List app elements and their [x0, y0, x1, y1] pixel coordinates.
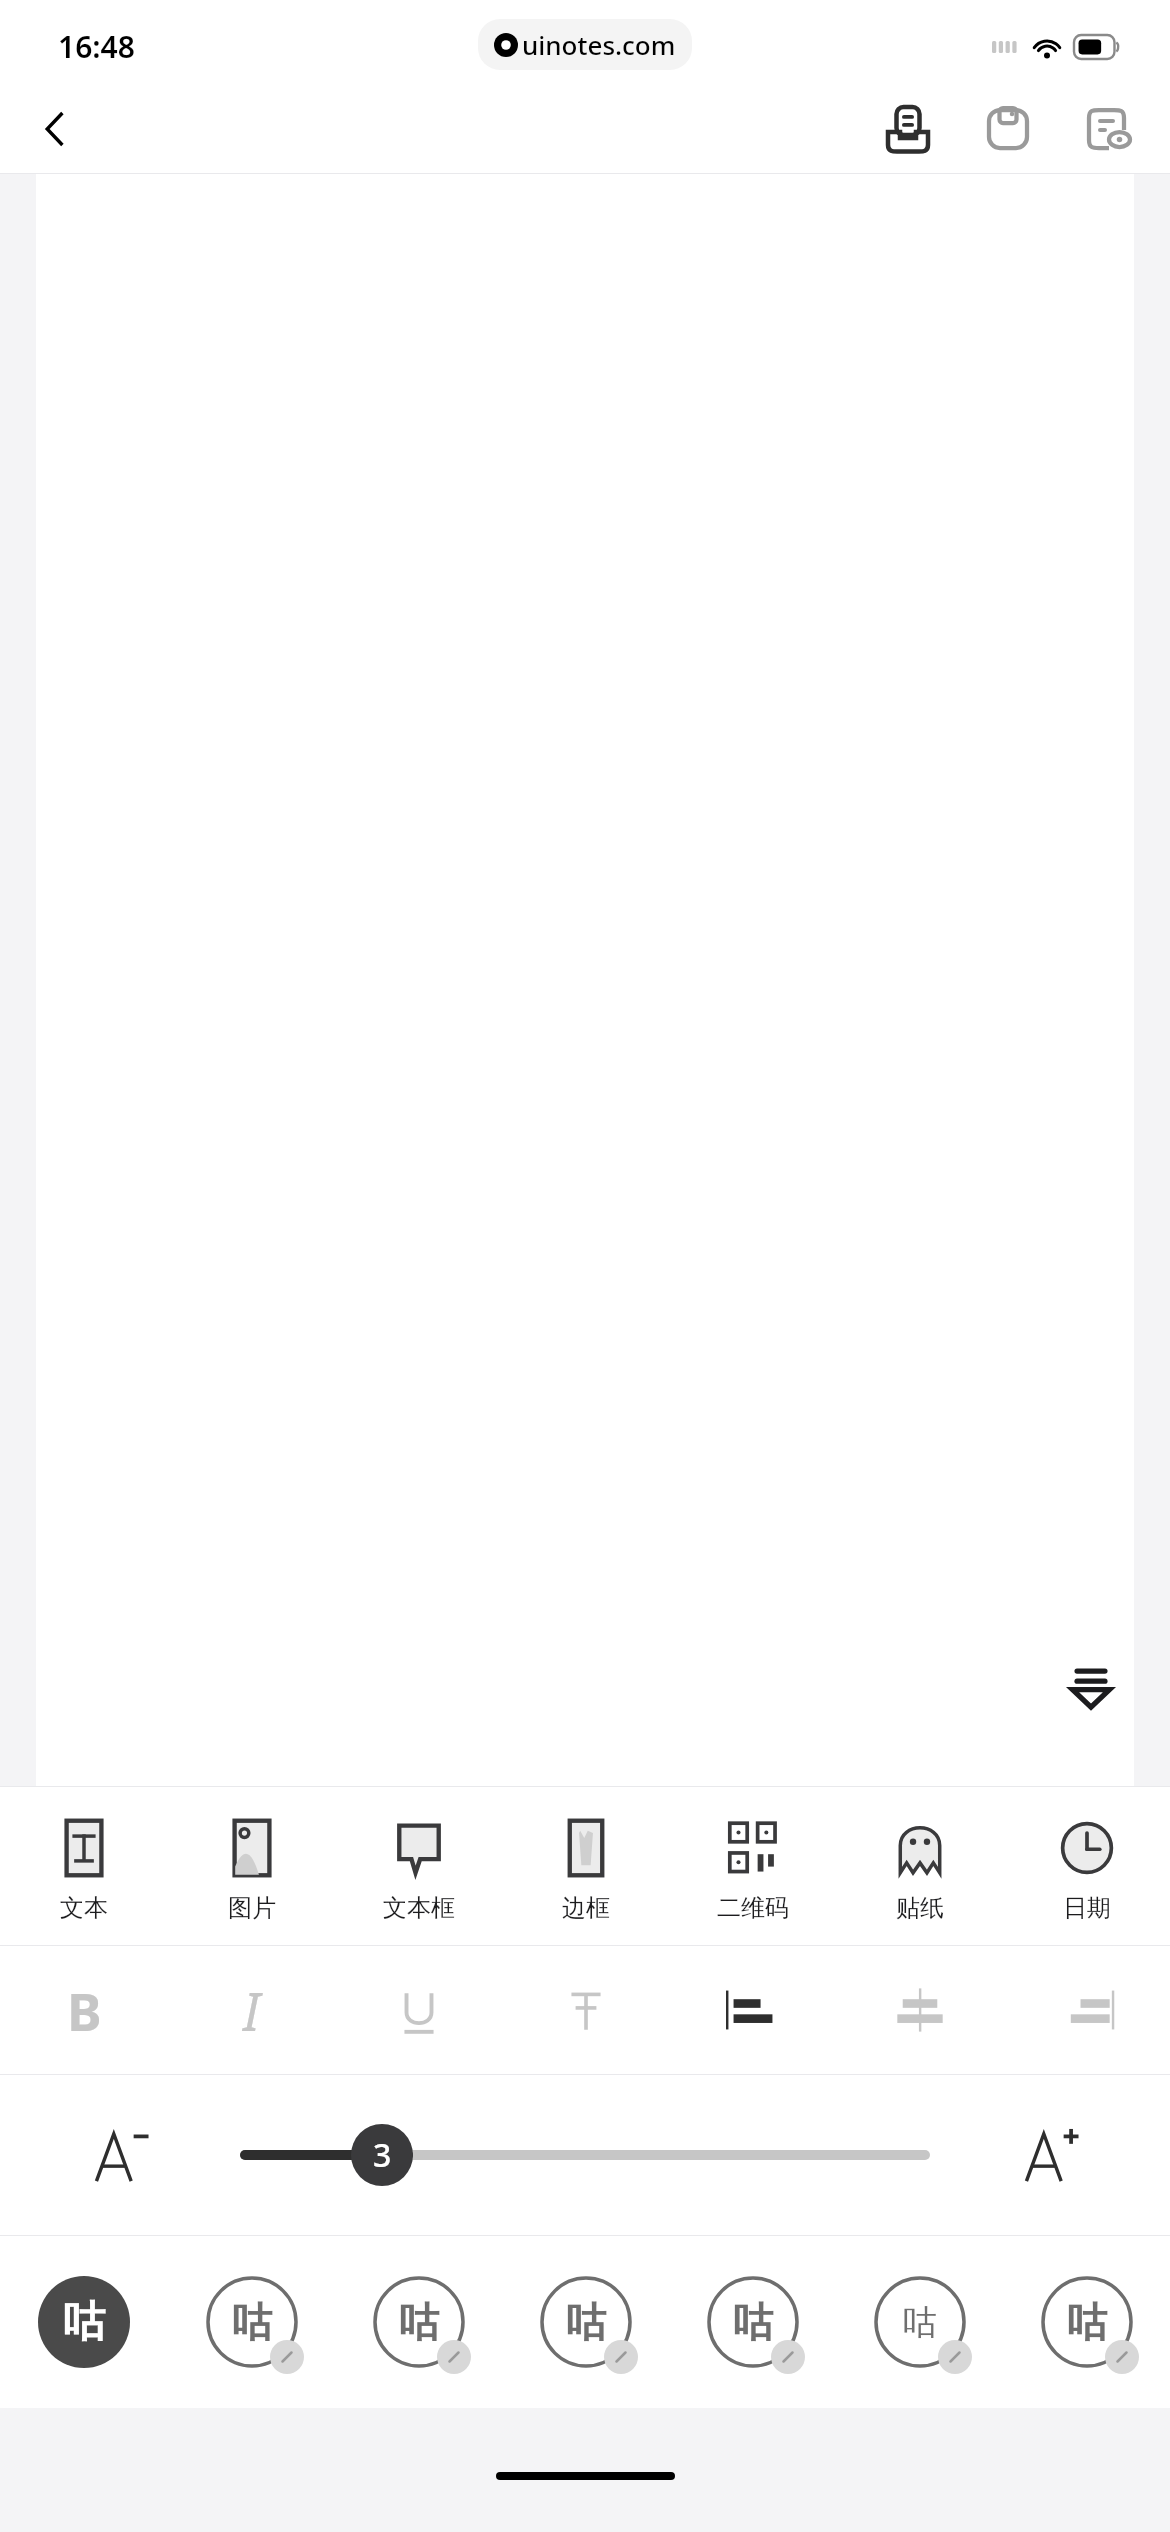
button[interactable]: Font style 6: [836, 2236, 1003, 2408]
staticText: 3: [373, 2133, 392, 2177]
button[interactable]: Collapse panel: [1048, 1642, 1134, 1728]
button[interactable]: 二维码: [669, 1787, 836, 1945]
staticText: uinotes.com: [522, 27, 676, 62]
staticText: 咕: [399, 2297, 439, 2347]
button[interactable]: 图片: [168, 1787, 335, 1945]
staticText: 日期: [1063, 1893, 1111, 1923]
staticText: 文本: [60, 1893, 108, 1923]
staticText: 咕: [733, 2297, 773, 2347]
staticText: 咕: [1067, 2297, 1107, 2347]
button[interactable]: 贴纸: [836, 1787, 1003, 1945]
staticText: 二维码: [717, 1893, 789, 1923]
button[interactable]: Strikethrough: [502, 1946, 669, 2074]
staticText: I: [243, 1975, 260, 2046]
staticText: 边框: [562, 1893, 610, 1923]
staticText: 16:48: [58, 26, 135, 67]
button[interactable]: 文本: [0, 1787, 168, 1945]
button[interactable]: Align right: [1003, 1946, 1170, 2074]
staticText: 贴纸: [896, 1893, 944, 1923]
button[interactable]: Italic: [168, 1946, 335, 2074]
staticText: 文本框: [383, 1893, 455, 1923]
button[interactable]: Bold: [0, 1946, 168, 2074]
button[interactable]: 日期: [1003, 1787, 1170, 1945]
button[interactable]: Align left: [669, 1946, 836, 2074]
staticText: 咕: [903, 2301, 937, 2344]
button[interactable]: 边框: [502, 1787, 669, 1945]
staticText: 咕: [232, 2297, 272, 2347]
button[interactable]: Template: [872, 93, 944, 165]
button[interactable]: Save: [972, 93, 1044, 165]
button[interactable]: 文本框: [335, 1787, 502, 1945]
staticText: 咕: [63, 2296, 105, 2349]
button[interactable]: Font style 7: [1003, 2236, 1170, 2408]
button[interactable]: Font style 3: [335, 2236, 502, 2408]
staticText: 咕: [566, 2297, 606, 2347]
button[interactable]: Increase font size: [930, 2075, 1170, 2235]
button[interactable]: Font style 5: [669, 2236, 836, 2408]
button[interactable]: Preview: [1072, 93, 1144, 165]
button[interactable]: 3: [351, 2124, 413, 2186]
button[interactable]: Back: [20, 93, 92, 165]
staticText: 图片: [228, 1893, 276, 1923]
button[interactable]: Decrease font size: [0, 2075, 240, 2235]
button[interactable]: Underline: [335, 1946, 502, 2074]
button[interactable]: Align center: [836, 1946, 1003, 2074]
button[interactable]: Font style 4: [502, 2236, 669, 2408]
button[interactable]: Font style 1: [0, 2236, 168, 2408]
button[interactable]: Font style 2: [168, 2236, 335, 2408]
staticText: B: [67, 1975, 102, 2046]
